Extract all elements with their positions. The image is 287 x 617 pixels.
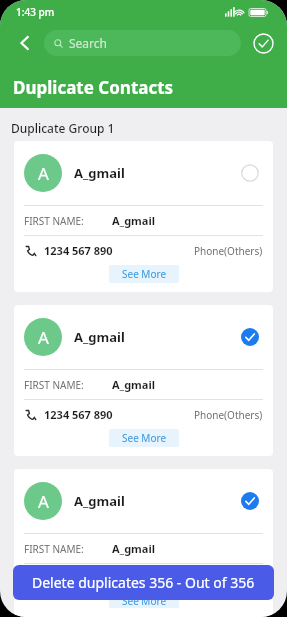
button[interactable]: Back <box>10 28 40 58</box>
staticText: A <box>38 162 49 185</box>
staticText: FIRST NAME: <box>24 542 84 556</box>
staticText: FIRST NAME: <box>24 214 84 228</box>
button[interactable]: See More <box>109 265 179 283</box>
staticText: 1234 567 890 <box>44 571 113 586</box>
staticText: 1234 567 890 <box>44 407 113 422</box>
staticText: Phone(Others) <box>194 244 263 258</box>
staticText: A_gmail <box>74 164 125 182</box>
button[interactable]: See More <box>109 593 179 608</box>
button[interactable]: See More <box>109 429 179 447</box>
button[interactable]: Not selected <box>237 160 263 186</box>
button[interactable]: A <box>14 469 273 617</box>
staticText: A_gmail <box>74 492 125 510</box>
button[interactable]: Confirm selection <box>249 29 277 57</box>
staticText: Duplicate Contacts <box>13 76 174 99</box>
button[interactable]: Search <box>44 30 241 56</box>
staticText: A <box>38 490 49 513</box>
staticText: Duplicate Group 1 <box>11 120 115 136</box>
staticText: FIRST NAME: <box>24 378 84 392</box>
staticText: A_gmail <box>74 328 125 346</box>
staticText: 1:43 pm <box>16 5 55 19</box>
button[interactable]: A <box>14 305 273 456</box>
button[interactable]: A <box>14 141 273 292</box>
staticText: A <box>38 326 49 349</box>
button[interactable]: Delete duplicates 356 - Out of 356 <box>13 565 274 600</box>
staticText: See More <box>122 267 167 281</box>
button[interactable]: Selected <box>237 488 263 514</box>
staticText: See More <box>122 594 167 608</box>
staticText: A_gmail <box>112 541 155 556</box>
staticText: 1234 567 890 <box>44 243 113 258</box>
staticText: Phone(Others) <box>194 572 263 586</box>
staticText: Phone(Others) <box>194 408 263 422</box>
button[interactable]: Selected <box>237 324 263 350</box>
staticText: A_gmail <box>112 377 155 392</box>
staticText: A_gmail <box>112 213 155 228</box>
staticText: Search <box>69 35 107 51</box>
staticText: Delete duplicates 356 - Out of 356 <box>32 573 255 592</box>
staticText: See More <box>122 431 167 445</box>
